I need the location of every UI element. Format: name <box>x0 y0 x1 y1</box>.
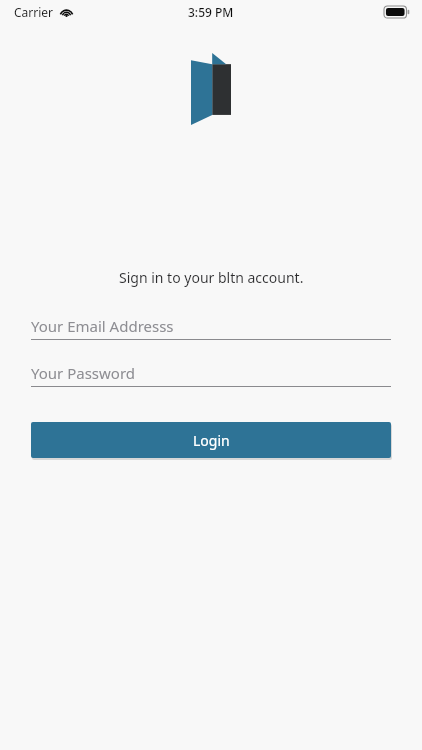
staticText: Login <box>193 431 230 450</box>
other: Battery <box>384 6 409 18</box>
staticText: Your Email Addresss <box>31 316 174 336</box>
button[interactable]: Login <box>31 422 391 458</box>
staticText: Your Password <box>31 363 136 383</box>
button[interactable]: Your Email Addresss <box>31 313 391 340</box>
staticText: Sign in to your bltn account. <box>119 268 304 287</box>
staticText: 3:59 PM <box>188 4 234 20</box>
other: bltn logo <box>191 53 231 125</box>
other: Wi-Fi <box>60 7 73 17</box>
button[interactable]: Your Password <box>31 360 391 387</box>
staticText: Carrier <box>14 4 54 20</box>
